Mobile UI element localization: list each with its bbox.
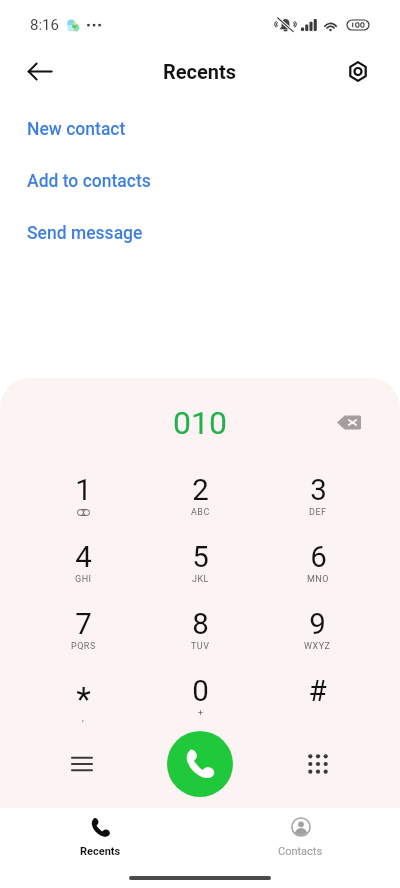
button[interactable]: Contacts [200,808,400,870]
staticText: TUV [191,641,210,652]
button[interactable]: 5 [142,540,259,607]
staticText: GHI [75,574,92,585]
staticText: PQRS [71,641,96,652]
button[interactable]: 3 [259,473,376,540]
staticText: * [76,679,91,719]
staticText: Add to contacts [27,171,151,192]
button[interactable]: 4 [25,540,142,607]
staticText: 0 [192,674,209,709]
staticText: Recents [163,60,237,83]
staticText: + [198,708,204,719]
button[interactable]: 2 [142,473,259,540]
button[interactable]: Send message [0,206,400,258]
button[interactable]: Keypad [296,742,340,786]
staticText: Recents [80,845,121,858]
staticText: WXYZ [304,641,331,652]
button[interactable]: 1 [25,473,142,540]
button[interactable]: Call [167,731,233,797]
staticText: ABC [191,507,210,518]
staticText: 8 [192,607,209,642]
staticText: 1 [75,473,92,508]
staticText: 010 [173,404,227,442]
button[interactable]: Add to contacts [0,154,400,206]
staticText: Contacts [278,845,323,858]
button[interactable]: 6 [259,540,376,607]
staticText: 8:16 [30,16,59,34]
button[interactable]: * [25,674,142,741]
button[interactable]: 0 [142,674,259,741]
button[interactable]: 9 [259,607,376,674]
staticText: 4 [75,540,92,575]
staticText: # [308,674,327,709]
button[interactable]: Recents [0,808,200,870]
staticText: , [82,713,85,724]
staticText: 7 [75,607,92,642]
button[interactable]: 8 [142,607,259,674]
button[interactable]: # [259,674,376,741]
button[interactable]: Settings [334,49,382,94]
button[interactable]: More options [60,742,104,786]
staticText: 3 [310,473,327,508]
staticText: JKL [192,574,209,585]
staticText: 9 [309,607,326,642]
staticText: DEF [309,507,327,518]
button[interactable]: Backspace [328,401,370,443]
button[interactable]: New contact [0,102,400,154]
button[interactable]: 7 [25,607,142,674]
staticText: 6 [310,540,327,575]
staticText: 2 [192,473,209,508]
button[interactable]: Back [16,49,64,94]
staticText: 5 [192,540,209,575]
staticText: Send message [27,223,143,244]
staticText: MNO [307,574,329,585]
staticText: New contact [27,119,126,140]
